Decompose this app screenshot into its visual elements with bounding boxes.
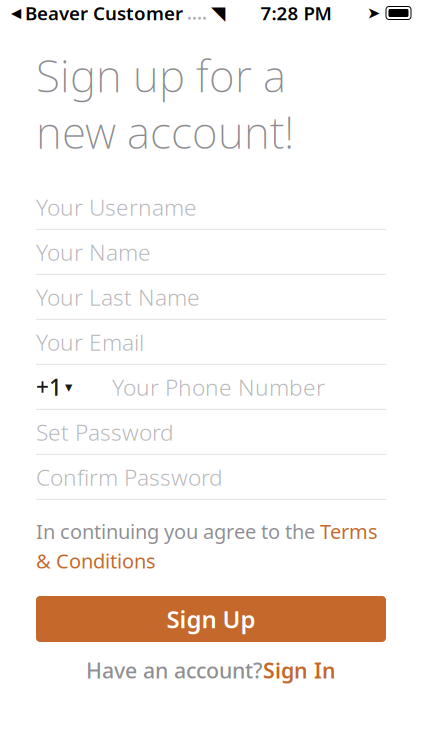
- staticText: Your Username: [36, 192, 197, 222]
- staticText: Confirm Password: [36, 462, 223, 492]
- staticText: ◀: [11, 5, 21, 20]
- staticText: Your Phone Number: [112, 372, 325, 402]
- button[interactable]: +1: [36, 365, 112, 409]
- staticText: new account!: [36, 102, 294, 161]
- staticText: Set Password: [36, 417, 174, 447]
- staticText: Your Email: [36, 327, 144, 357]
- staticText: Beaver Customer: [25, 1, 183, 25]
- staticText: ➤: [367, 4, 380, 22]
- button[interactable]: & Conditions: [36, 547, 156, 574]
- staticText: ....: [187, 1, 207, 24]
- staticText: ▾: [65, 378, 72, 395]
- button[interactable]: Terms: [320, 518, 378, 544]
- staticText: Have an account?: [86, 656, 263, 684]
- staticText: & Conditions: [36, 547, 156, 574]
- staticText: Sign Up: [166, 603, 255, 635]
- staticText: 7:28 PM: [260, 1, 331, 25]
- staticText: Sign up for a: [36, 46, 286, 104]
- staticText: +1: [36, 372, 62, 402]
- button[interactable]: Sign Up: [36, 596, 386, 642]
- staticText: Terms: [320, 518, 378, 544]
- staticText: Your Last Name: [36, 282, 200, 312]
- staticText: ◥: [211, 2, 225, 24]
- staticText: In continuing you agree to the: [36, 518, 320, 544]
- staticText: Sign In: [263, 656, 336, 684]
- staticText: Your Name: [36, 237, 151, 267]
- button[interactable]: Sign In: [263, 656, 336, 684]
